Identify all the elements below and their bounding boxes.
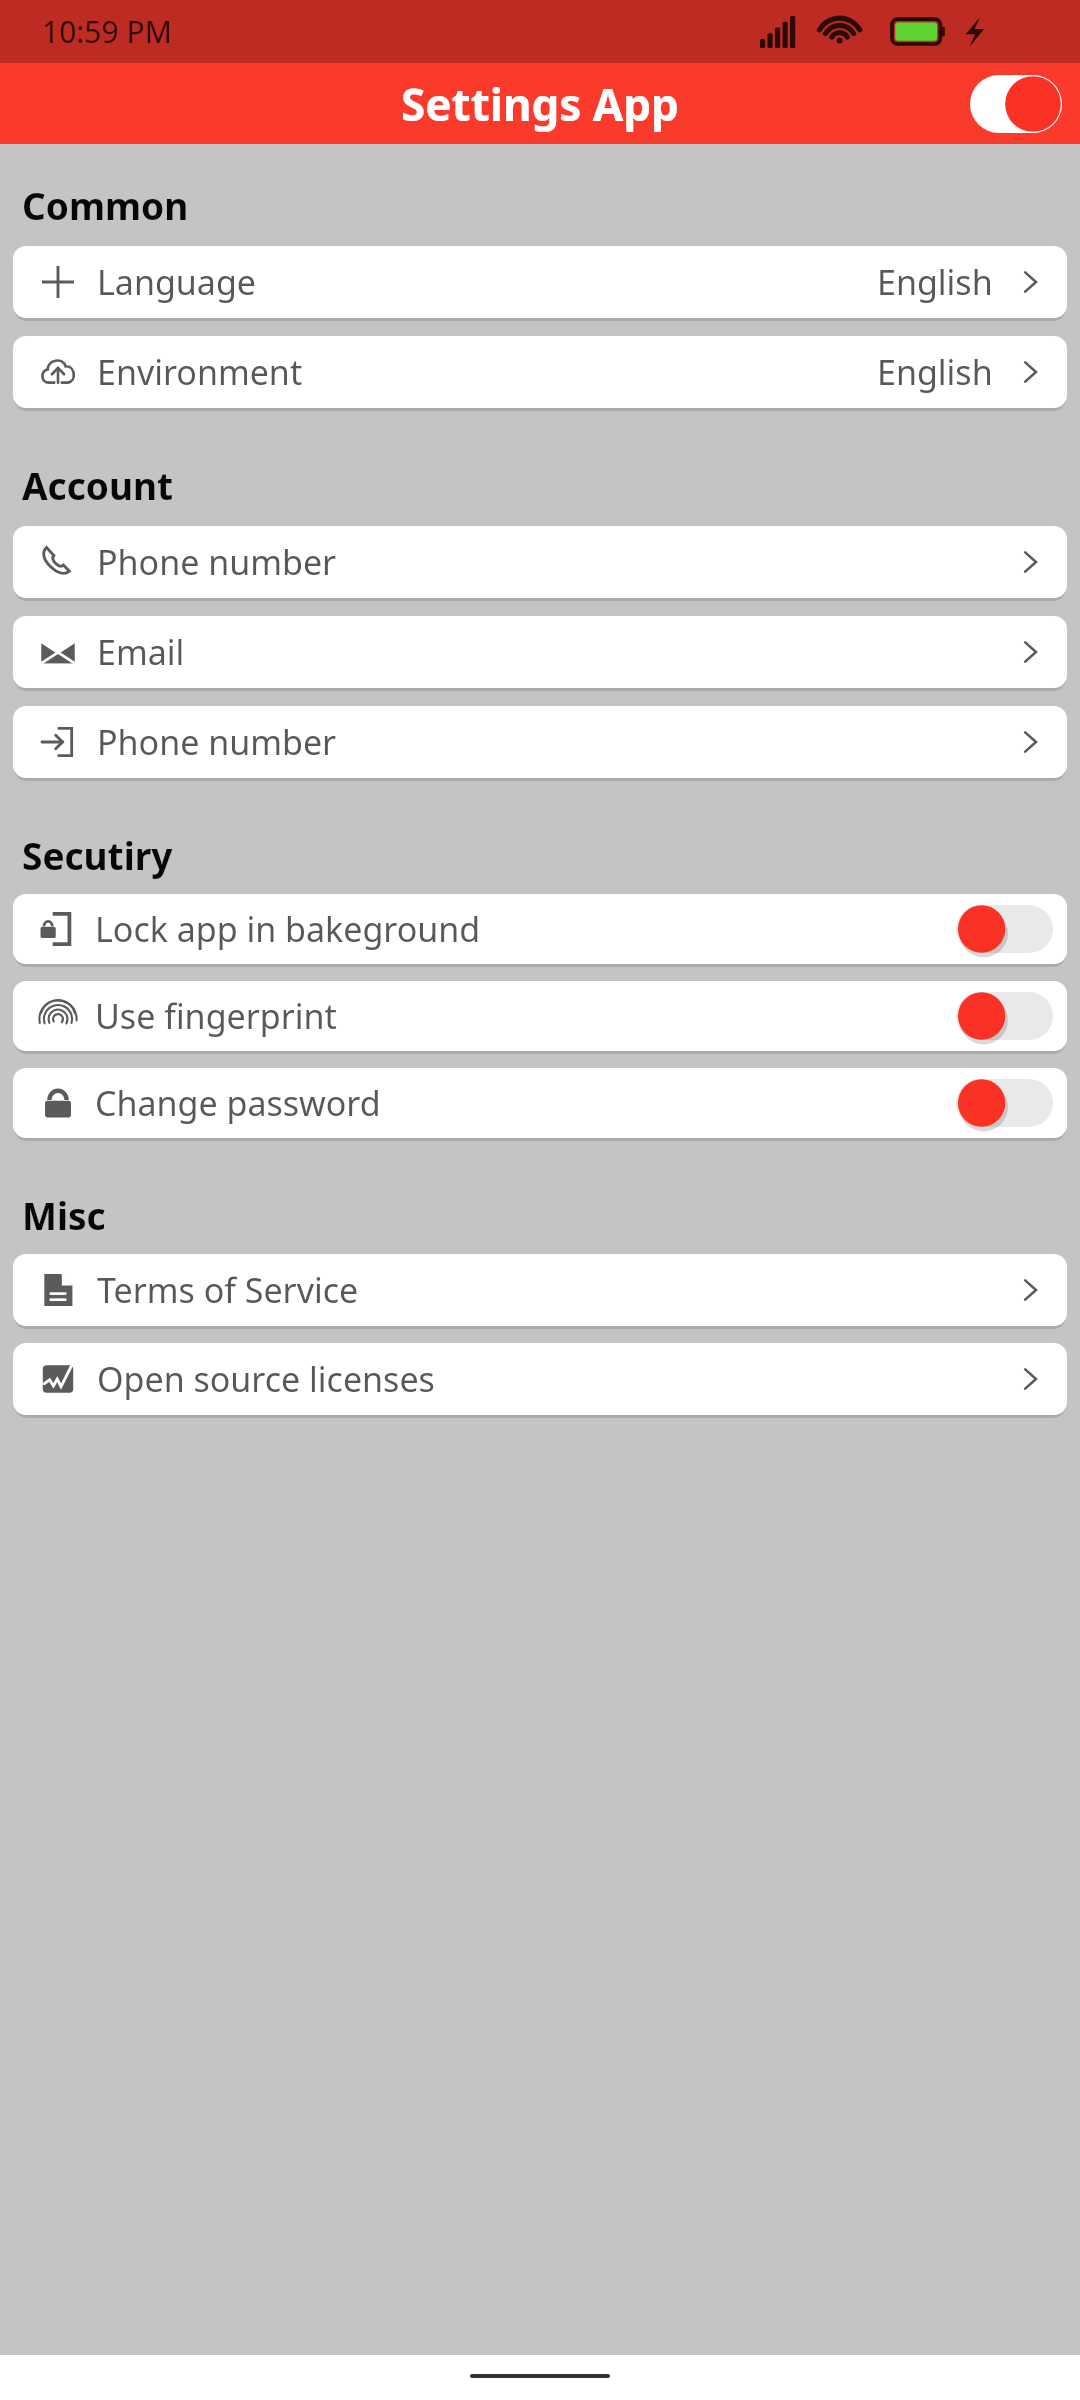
button[interactable]: Change password (13, 1068, 1067, 1138)
staticText: Secutiry (22, 830, 173, 880)
button[interactable]: Environment (13, 336, 1067, 408)
staticText: Phone number (97, 539, 337, 585)
button[interactable]: Toggle (956, 990, 1053, 1042)
staticText: English (877, 259, 993, 305)
staticText: Use fingerprint (95, 993, 337, 1039)
staticText: Language (97, 259, 256, 305)
staticText: Terms of Service (97, 1267, 359, 1313)
button[interactable]: Terms of Service (13, 1254, 1067, 1326)
staticText: 10:59 PM (42, 11, 172, 52)
button[interactable]: Language (13, 246, 1067, 318)
staticText: Account (22, 460, 174, 510)
button[interactable]: Phone number (13, 706, 1067, 778)
staticText: Change password (95, 1080, 381, 1126)
button[interactable]: Phone number (13, 526, 1067, 598)
staticText: Phone number (97, 719, 337, 765)
button[interactable]: Toggle (956, 903, 1053, 955)
staticText: Settings App (401, 74, 679, 134)
button[interactable]: Toggle (956, 1077, 1053, 1129)
button[interactable]: Open source licenses (13, 1343, 1067, 1415)
staticText: Common (22, 180, 189, 230)
button[interactable]: Toggle theme (970, 75, 1062, 133)
staticText: Open source licenses (97, 1356, 435, 1402)
button[interactable]: Lock app in bakeground (13, 894, 1067, 964)
staticText: Misc (22, 1190, 106, 1240)
button[interactable]: Email (13, 616, 1067, 688)
staticText: Lock app in bakeground (95, 906, 481, 952)
staticText: Environment (97, 349, 303, 395)
staticText: Email (97, 629, 185, 675)
staticText: English (877, 349, 993, 395)
button[interactable]: Use fingerprint (13, 981, 1067, 1051)
